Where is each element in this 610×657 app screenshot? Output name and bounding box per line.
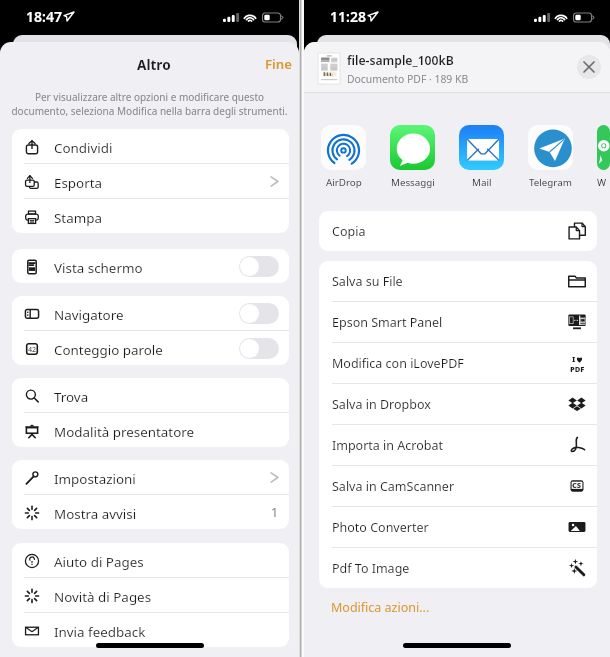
button[interactable]: Vista schermo [12, 249, 289, 283]
button[interactable]: Attiva/disattiva [239, 338, 279, 359]
staticText: Salva in Dropbox [332, 396, 431, 413]
staticText: Condividi [54, 139, 113, 157]
button[interactable]: Attiva/disattiva [239, 256, 279, 277]
button[interactable]: Messaggi [390, 125, 435, 189]
button[interactable]: WhatsApp [597, 125, 610, 189]
staticText: PDF [570, 364, 585, 372]
staticText: 11:28 [330, 7, 366, 26]
button[interactable]: Salva in CamScanner [319, 466, 597, 506]
button[interactable]: Importa in Acrobat [319, 425, 597, 465]
button[interactable]: 42 [12, 331, 289, 365]
button[interactable]: Mostra avvisi [12, 495, 289, 529]
staticText: Vista schermo [54, 259, 143, 277]
button[interactable]: file-sample_100kB [304, 42, 610, 92]
button[interactable]: Invia feedback [12, 613, 289, 647]
button[interactable]: Mail [459, 125, 504, 189]
staticText: Mail [472, 176, 492, 189]
staticText: AirDrop [326, 176, 362, 189]
staticText: Conteggio parole [54, 341, 163, 359]
staticText: CS [572, 480, 582, 490]
staticText: Per visualizzare altre opzioni e modific… [8, 90, 291, 118]
staticText: Trova [54, 388, 89, 406]
staticText: Navigatore [54, 306, 124, 324]
button[interactable]: Stampa [12, 199, 289, 233]
staticText: Esporta [54, 174, 103, 192]
button[interactable]: Aiuto di Pages [12, 543, 289, 577]
button[interactable]: Modifica azioni... [331, 599, 430, 616]
staticText: Pdf To Image [332, 560, 410, 577]
staticText: Epson Smart Panel [332, 314, 443, 331]
staticText: Impostazioni [54, 470, 136, 488]
button[interactable]: Trova [12, 378, 289, 412]
staticText: Documento PDF · 189 KB [347, 72, 469, 86]
button[interactable]: Attiva/disattiva [239, 303, 279, 324]
staticText: I [572, 354, 576, 364]
staticText: Photo Converter [332, 519, 429, 536]
staticText: Mostra avvisi [54, 505, 137, 523]
staticText: Novità di Pages [54, 588, 152, 606]
staticText: WhatsApp [597, 176, 610, 189]
staticText: 1 [271, 504, 279, 521]
staticText: Modalità presentatore [54, 423, 195, 441]
button[interactable]: Pdf To Image [319, 548, 597, 588]
button[interactable]: Impostazioni [12, 460, 289, 494]
button[interactable]: Telegram [528, 125, 573, 189]
staticText: Copia [332, 223, 366, 240]
button[interactable]: AirDrop [321, 125, 366, 189]
staticText: Stampa [54, 209, 102, 227]
staticText: Modifica con iLovePDF [332, 355, 464, 372]
button[interactable]: Condividi [12, 129, 289, 163]
button[interactable]: Esporta [12, 164, 289, 198]
staticText: Invia feedback [54, 623, 146, 641]
staticText: Telegram [529, 176, 572, 189]
button[interactable]: Modalità presentatore [12, 413, 289, 447]
button[interactable]: Novità di Pages [12, 578, 289, 612]
button[interactable]: Photo Converter [319, 507, 597, 547]
button[interactable]: Salva su File [319, 261, 597, 301]
staticText: Altro [137, 55, 171, 74]
button[interactable]: Navigatore [12, 296, 289, 330]
staticText: Salva su File [332, 273, 403, 290]
staticText: Aiuto di Pages [54, 553, 144, 571]
staticText: Salva in CamScanner [332, 478, 455, 495]
staticText: file-sample_100kB [347, 52, 454, 69]
button[interactable]: Salva in Dropbox [319, 384, 597, 424]
staticText: Messaggi [391, 176, 435, 189]
button[interactable]: Epson Smart Panel [319, 302, 597, 342]
button[interactable]: Chiudi [577, 55, 601, 79]
staticText: 18:47 [26, 7, 62, 26]
staticText: Importa in Acrobat [332, 437, 443, 454]
button[interactable]: Copia [319, 211, 597, 251]
staticText: 42 [28, 344, 37, 354]
button[interactable]: Modifica con iLovePDF [319, 343, 597, 383]
button[interactable]: Fine [253, 47, 299, 81]
staticText: Fine [265, 55, 292, 73]
